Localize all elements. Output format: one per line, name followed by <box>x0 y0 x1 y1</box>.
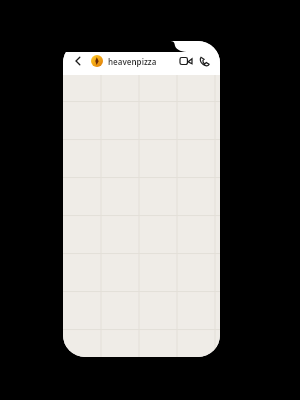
button[interactable]: heavenpizza <box>91 55 178 67</box>
button[interactable]: Back <box>71 54 85 68</box>
button[interactable]: Call <box>196 53 212 69</box>
staticText: heavenpizza <box>108 56 157 67</box>
button[interactable]: Video call <box>178 53 194 69</box>
